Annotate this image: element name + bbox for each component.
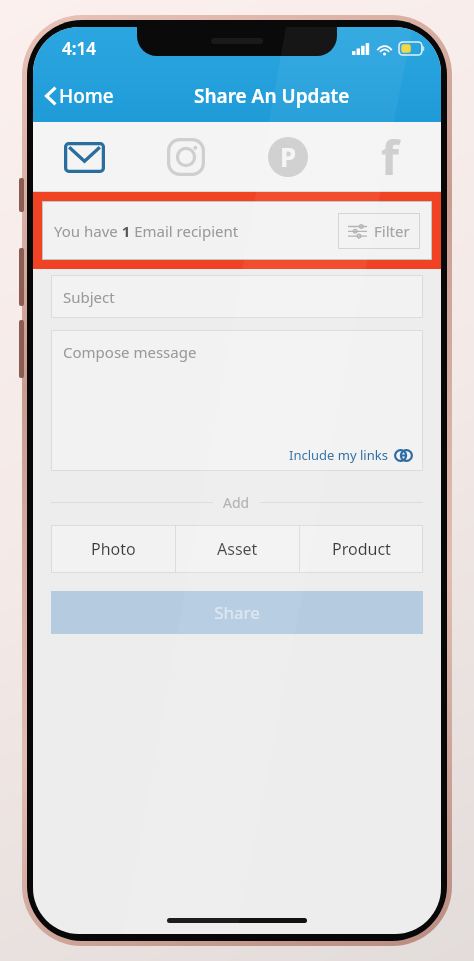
button[interactable]: Share — [51, 591, 423, 634]
button[interactable]: Instagram — [135, 122, 237, 192]
staticText: Photo — [91, 538, 136, 560]
staticText: Compose message — [63, 342, 197, 362]
staticText: Asset — [217, 538, 258, 560]
button[interactable]: Product — [300, 525, 423, 573]
staticText: Add — [223, 493, 250, 512]
staticText: Product — [332, 538, 391, 560]
staticText: 4:14 — [62, 37, 96, 60]
button[interactable]: Facebook — [339, 122, 441, 192]
button[interactable]: Compose message — [51, 330, 423, 471]
button[interactable]: Subject — [51, 275, 423, 318]
staticText: Home — [59, 83, 114, 109]
button[interactable]: Home — [33, 77, 126, 115]
button[interactable]: Asset — [176, 525, 299, 573]
button[interactable]: Photo — [51, 525, 175, 573]
button[interactable]: Include my links — [289, 446, 423, 471]
staticText: You have 1 Email recipient — [54, 221, 239, 241]
staticText: Include my links — [289, 446, 388, 464]
staticText: Share An Update — [194, 83, 350, 109]
staticText: f — [381, 126, 399, 189]
button[interactable]: You have 1 Email recipient — [42, 201, 432, 260]
button[interactable]: Pinterest — [237, 122, 339, 192]
staticText: P — [280, 139, 297, 174]
staticText: Subject — [63, 287, 115, 307]
button[interactable]: Filter — [338, 213, 420, 249]
staticText: Filter — [374, 221, 410, 241]
button[interactable]: Email — [33, 122, 135, 192]
staticText: Share — [214, 601, 260, 624]
